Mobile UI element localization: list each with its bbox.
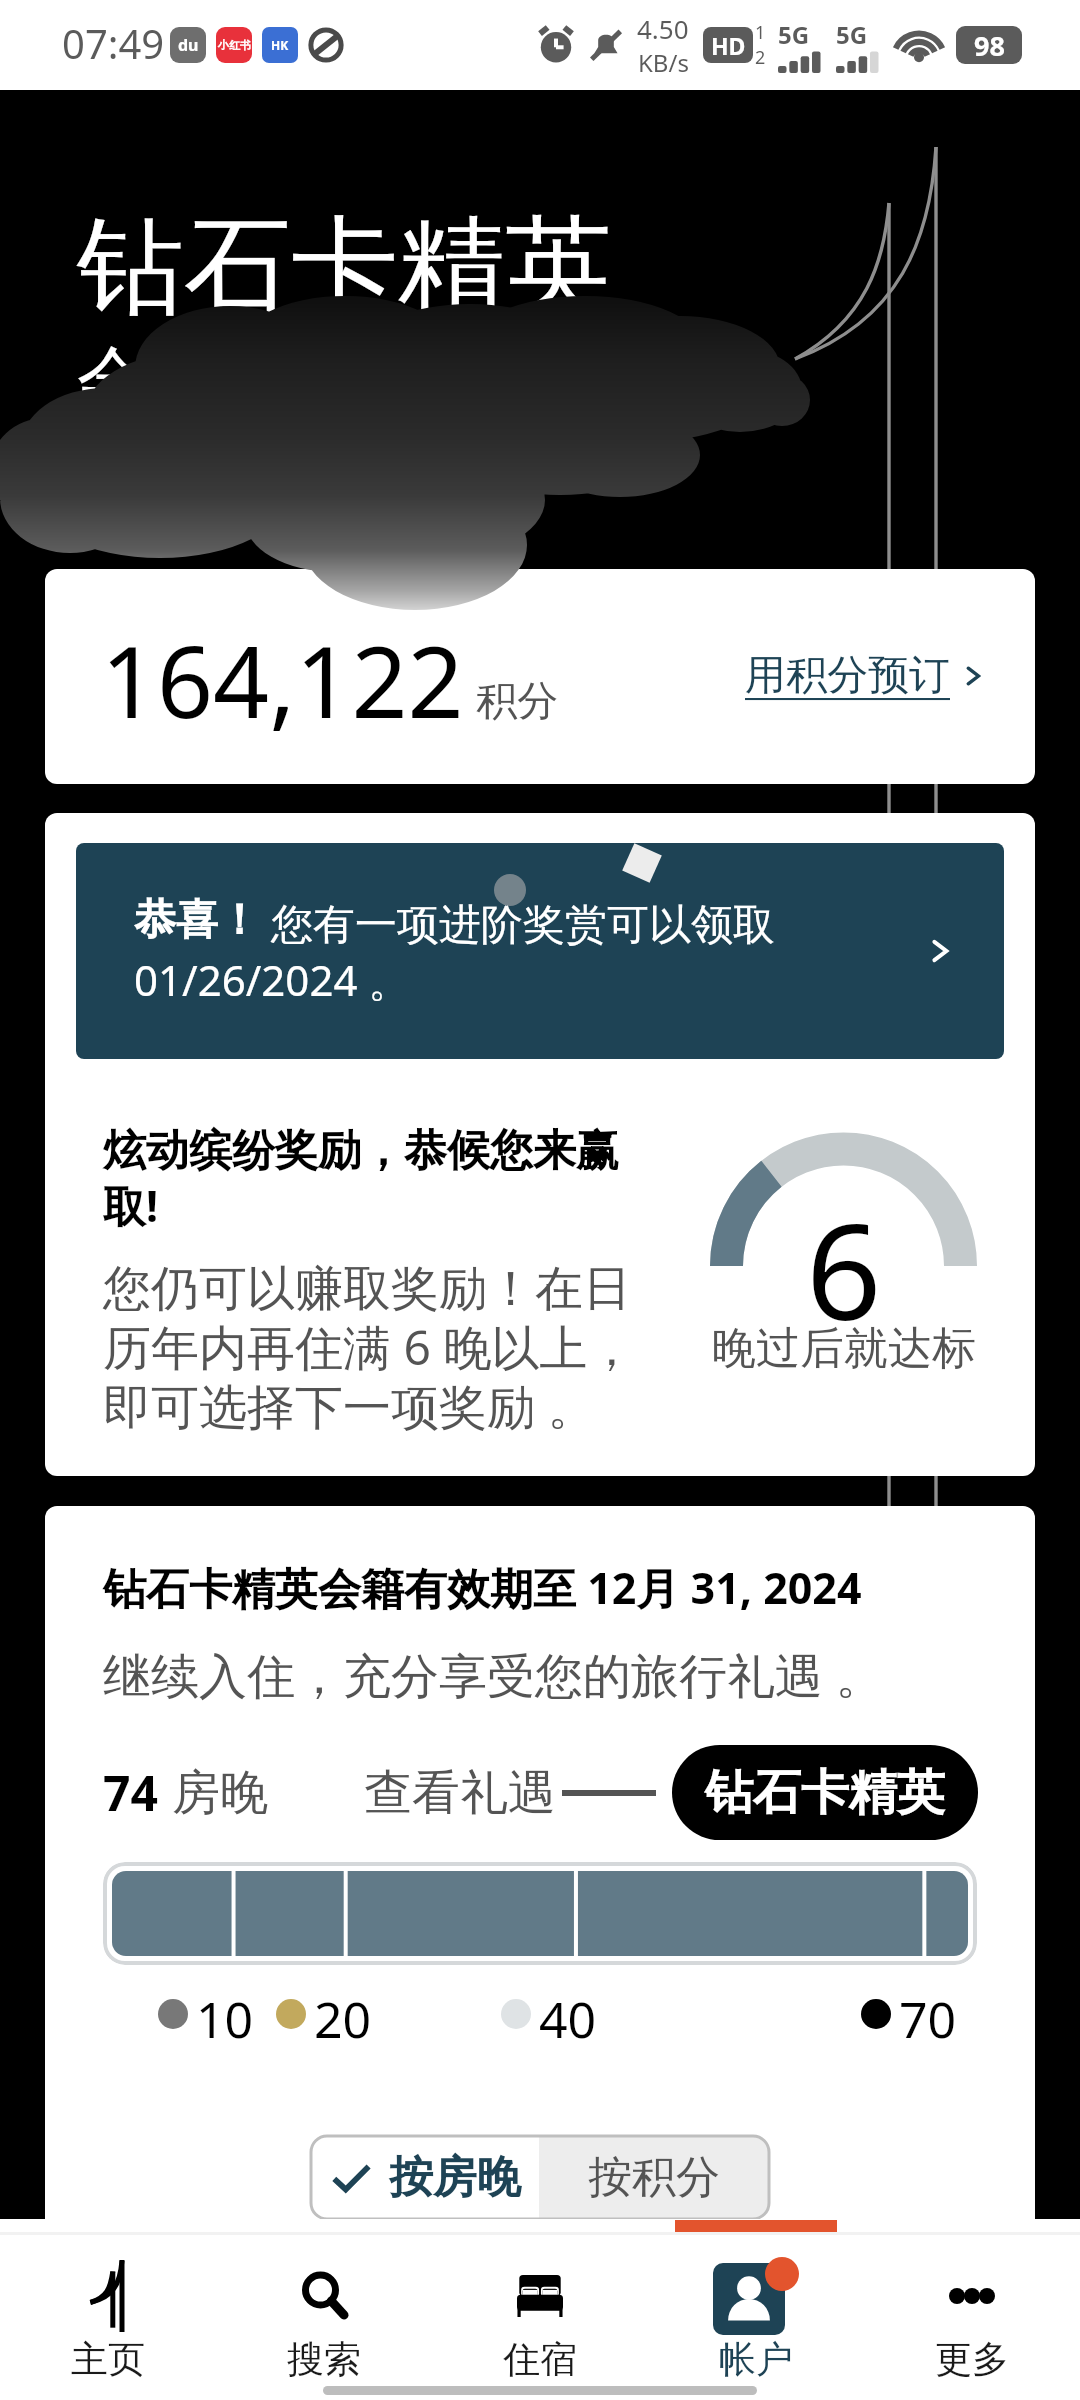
staticText: 继续入住，充分享受您的旅行礼遇 。 [103, 1642, 884, 1708]
staticText: 4.50 [637, 11, 689, 46]
button[interactable]: More [864, 2256, 1080, 2383]
staticText: 按积分 [588, 2150, 720, 2205]
button[interactable]: Account [648, 2256, 864, 2383]
staticText: 搜索 [287, 2336, 361, 2383]
staticText: 10 [196, 1985, 254, 2043]
staticText: 查看礼遇 [364, 1763, 556, 1823]
staticText: 帐户 [719, 2336, 793, 2383]
staticText: HD [711, 30, 746, 61]
staticText: 钻石卡精英 [705, 1763, 945, 1823]
staticText: 6 [806, 1179, 882, 1359]
staticText: 164,122 [101, 613, 464, 746]
staticText: 您仍可以赚取奖励！在日历年内再住满 6 晚以上，即可选择下一项奖励 。 [103, 1259, 663, 1438]
staticText: 您有一项进阶奖赏可以领取 [260, 894, 775, 951]
staticText: 98 [974, 27, 1005, 64]
button[interactable]: Search [216, 2256, 432, 2383]
staticText: 40 [539, 1985, 597, 2043]
staticText: 1 [755, 20, 766, 45]
staticText: 5G [836, 18, 868, 51]
other: Search [299, 2271, 349, 2321]
staticText: du [178, 34, 199, 56]
other: More [949, 2286, 995, 2306]
button[interactable]: 钻石卡精英 [672, 1745, 978, 1840]
button[interactable]: 按房晚 [311, 2136, 539, 2219]
button[interactable]: 恭喜！ [76, 843, 1004, 1059]
staticText: 晚过后就达标 [712, 1321, 976, 1376]
other: Home [88, 2260, 128, 2332]
staticText: 用积分预订 [745, 650, 950, 702]
button[interactable]: Home [0, 2256, 216, 2383]
staticText: 更多 [935, 2336, 1009, 2383]
other: Account [713, 2257, 799, 2335]
staticText: 按房晚 [389, 2150, 521, 2205]
staticText: 小红书 [218, 38, 251, 52]
button[interactable]: 查看礼遇 [364, 1763, 556, 1823]
staticText: KB/s [638, 46, 689, 79]
other: Stays [517, 2275, 563, 2317]
staticText: 20 [314, 1985, 372, 2043]
staticText: 07:49 [62, 16, 165, 70]
staticText: 炫动缤纷奖励，恭候您来赢取! [103, 1124, 663, 1235]
button[interactable]: Stays [432, 2256, 648, 2383]
staticText: 2 [755, 45, 766, 70]
staticText: 70 [899, 1985, 957, 2043]
staticText: 主页 [71, 2336, 145, 2383]
staticText: 钻石卡精英会籍有效期至 12月 31, 2024 [103, 1558, 862, 1617]
staticText: HK [271, 37, 289, 53]
button[interactable]: 按积分 [539, 2136, 769, 2219]
staticText: 房晚 [172, 1763, 268, 1823]
staticText: 01/26/2024 。 [134, 951, 411, 1008]
staticText: 积分 [476, 676, 558, 728]
button[interactable]: 164,122 [45, 569, 1035, 784]
staticText: 住宿 [503, 2336, 577, 2383]
staticText: 74 [103, 1760, 158, 1825]
staticText: 5G [778, 18, 810, 51]
staticText: 会员 [77, 335, 221, 426]
staticText: 恭喜！ [134, 894, 260, 947]
staticText: 钻石卡精英 [77, 200, 612, 335]
